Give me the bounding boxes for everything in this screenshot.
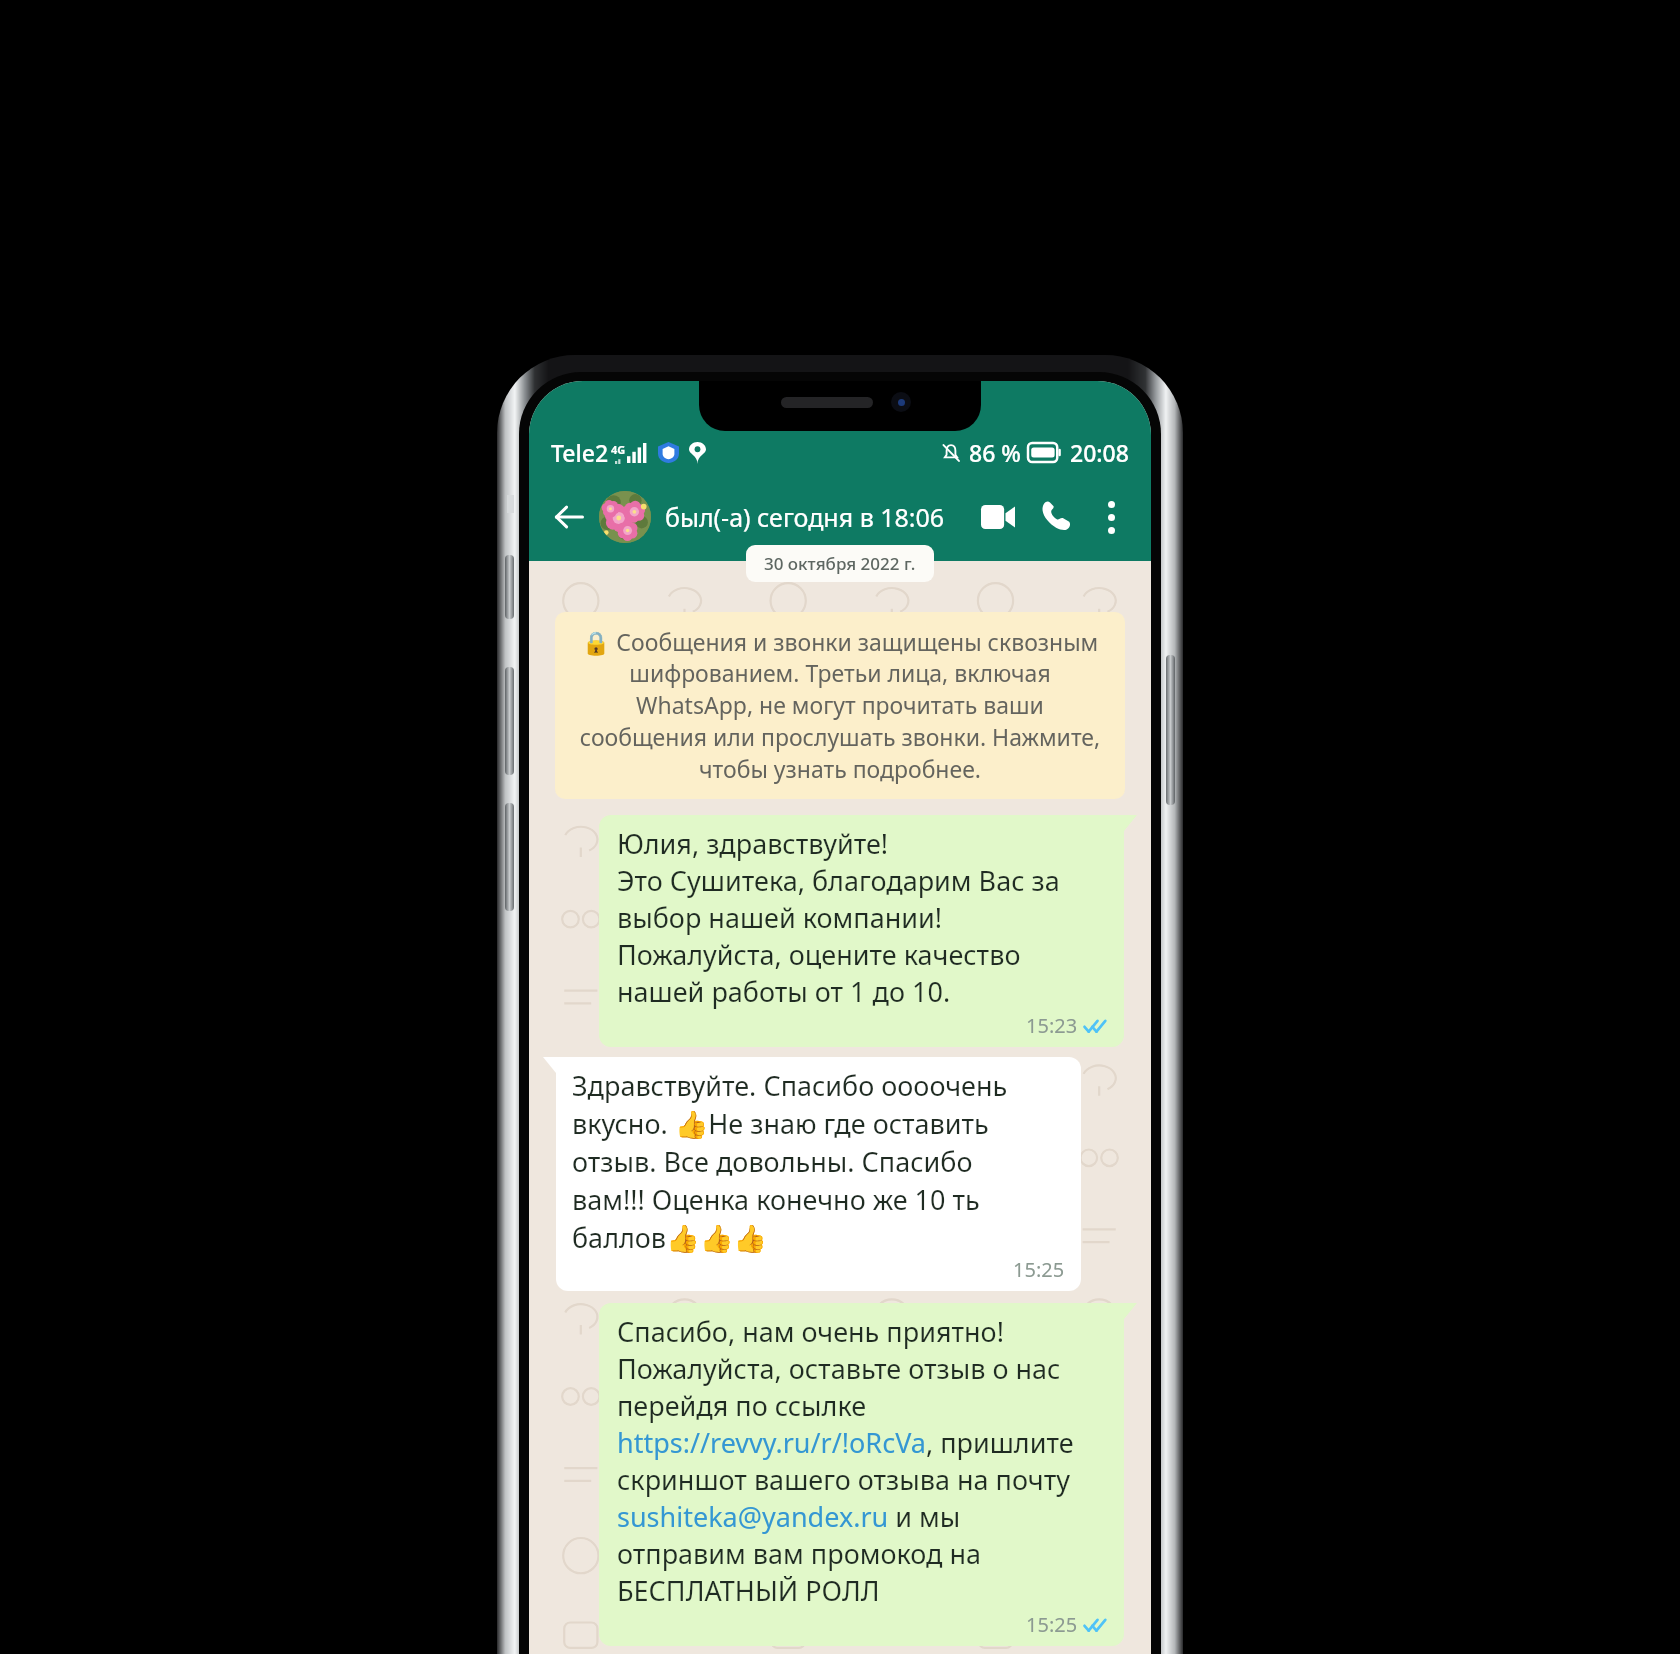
button[interactable]: Юлия, здравствуйте! Это Сушитека, благод… (599, 815, 1137, 1047)
staticText: Спасибо, нам очень приятно! Пожалуйста, … (617, 1313, 1074, 1609)
button[interactable]: был(-а) сегодня в 18:06 (665, 500, 969, 534)
staticText: Юлия, здравствуйте! Это Сушитека, благод… (617, 825, 1060, 1010)
staticText: Tele2 (551, 437, 609, 468)
staticText: 15:23 (1026, 1012, 1078, 1039)
button[interactable]: Спасибо, нам очень приятно! Пожалуйста, … (599, 1303, 1137, 1646)
staticText: 4G (611, 442, 626, 457)
staticText: 🔒 Сообщения и звонки защищены сквозным ш… (573, 626, 1107, 785)
staticText: Здравствуйте. Спасибо оооочень вкусно. 👍… (572, 1067, 1008, 1256)
button[interactable]: Back (543, 491, 595, 543)
staticText: 30 октября 2022 г. (764, 552, 916, 575)
staticText: 20:08 (1070, 437, 1129, 468)
button[interactable]: More options (1085, 491, 1137, 543)
button[interactable]: Contact avatar (599, 491, 651, 543)
button[interactable]: Video call (969, 488, 1027, 546)
staticText: был(-а) сегодня в 18:06 (665, 500, 945, 534)
staticText: 15:25 (1026, 1611, 1078, 1638)
staticText: 86 % (969, 437, 1021, 468)
button[interactable]: Voice call (1027, 488, 1085, 546)
button[interactable]: Здравствуйте. Спасибо оооочень вкусно. 👍… (543, 1057, 1081, 1291)
staticText: 15:25 (1013, 1256, 1065, 1283)
button[interactable]: 🔒 Сообщения и звонки защищены сквозным ш… (555, 612, 1125, 799)
